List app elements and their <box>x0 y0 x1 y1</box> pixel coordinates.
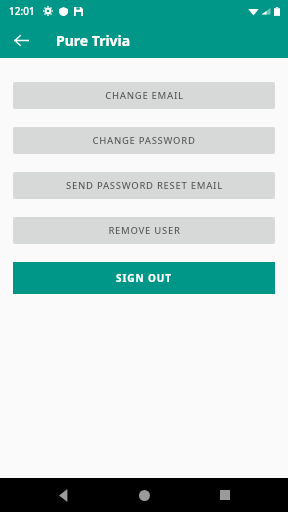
button[interactable]: SEND PASSWORD RESET EMAIL <box>13 172 275 199</box>
button[interactable]: Back <box>47 478 81 512</box>
button[interactable]: Home <box>127 478 161 512</box>
button[interactable]: REMOVE USER <box>13 217 275 244</box>
button[interactable]: CHANGE EMAIL <box>13 82 275 109</box>
staticText: Pure Trivia <box>56 31 131 50</box>
staticText: CHANGE PASSWORD <box>92 134 196 147</box>
button[interactable]: SIGN OUT <box>13 262 275 294</box>
staticText: CHANGE EMAIL <box>105 89 184 102</box>
button[interactable]: CHANGE PASSWORD <box>13 127 275 154</box>
staticText: REMOVE USER <box>108 224 181 237</box>
staticText: 12:01 <box>9 4 35 18</box>
staticText: SIGN OUT <box>116 271 172 285</box>
staticText: SEND PASSWORD RESET EMAIL <box>66 179 223 192</box>
button[interactable]: Recent apps <box>208 478 242 512</box>
button[interactable]: Back <box>8 27 34 53</box>
